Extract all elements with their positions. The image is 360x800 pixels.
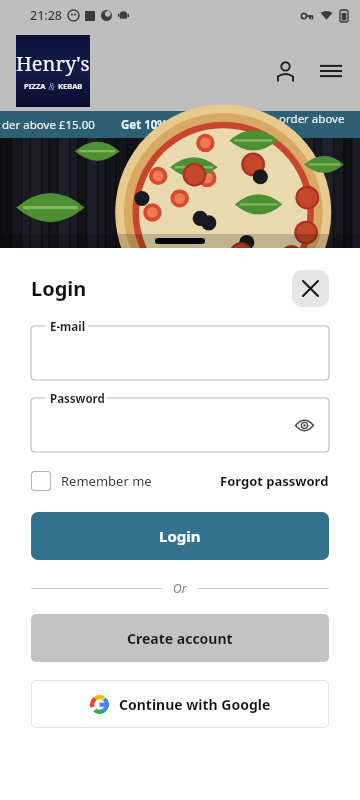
- button[interactable]: Continue with Google: [31, 680, 329, 728]
- button[interactable]: Create account: [31, 614, 329, 662]
- staticText: Login: [31, 275, 292, 302]
- staticText: 21:28: [30, 7, 63, 24]
- staticText: Forgot password: [220, 472, 329, 490]
- button[interactable]: Close: [292, 270, 329, 307]
- staticText: Or: [173, 580, 187, 596]
- staticText: Get 10% discount: [121, 117, 221, 133]
- staticText: Henry's: [16, 50, 90, 77]
- staticText: KEBAB: [58, 81, 83, 91]
- button[interactable]: Menu: [316, 56, 346, 86]
- staticText: PIZZA: [24, 81, 46, 91]
- staticText: E-mail: [50, 319, 86, 335]
- button[interactable]: Forgot password: [220, 472, 329, 490]
- button[interactable]: Account: [270, 56, 300, 86]
- staticText: Login: [159, 526, 201, 546]
- staticText: der above £15.00: [2, 117, 95, 133]
- button[interactable]: der above £15.00: [0, 111, 360, 138]
- staticText: On order above £15.00: [260, 111, 360, 138]
- staticText: Remember me: [61, 472, 152, 490]
- button[interactable]: Show password: [291, 412, 317, 438]
- staticText: Password: [50, 391, 105, 407]
- staticText: Continue with Google: [119, 695, 271, 714]
- button[interactable]: Remember me: [31, 471, 152, 491]
- staticText: Create account: [127, 629, 233, 648]
- button[interactable]: Login: [31, 512, 329, 560]
- staticText: &: [46, 80, 58, 92]
- button[interactable]: Henry's Pizza & Kebab logo: [16, 35, 90, 107]
